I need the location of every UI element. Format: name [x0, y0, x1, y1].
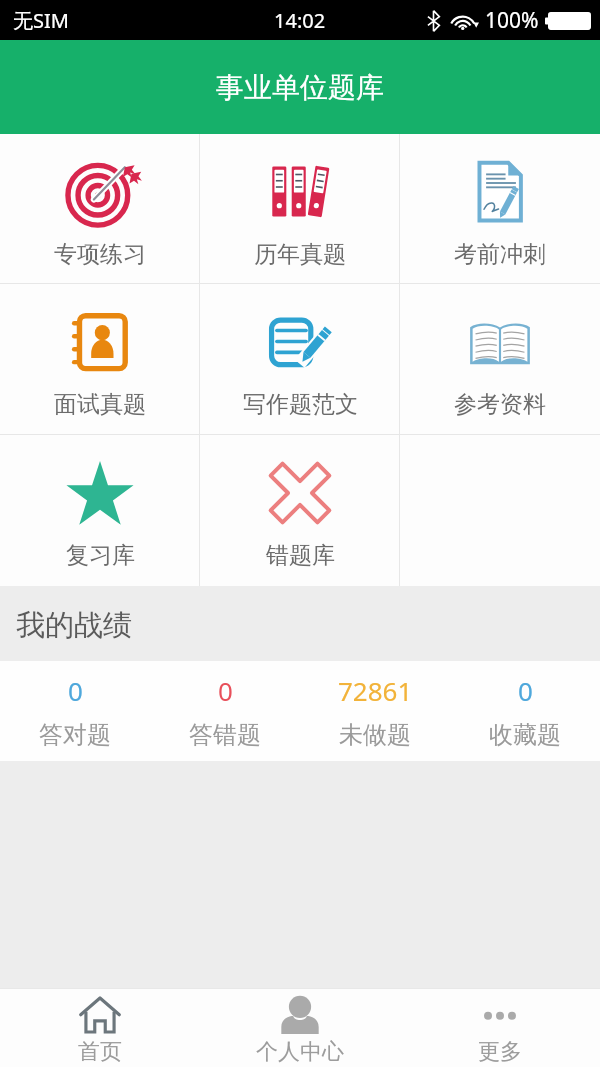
button[interactable]: 历年真题	[200, 134, 400, 284]
staticText: 14:02	[274, 7, 326, 34]
staticText: 更多	[478, 1038, 522, 1066]
staticText: 未做题	[339, 720, 411, 750]
button[interactable]: 面试真题	[0, 284, 200, 435]
staticText: 错题库	[266, 541, 335, 570]
staticText: 答错题	[189, 720, 261, 750]
staticText: 历年真题	[254, 240, 346, 269]
staticText: 0	[218, 673, 233, 708]
button[interactable]: 0	[150, 661, 300, 761]
staticText: 写作题范文	[243, 390, 358, 419]
staticText: 首页	[78, 1038, 122, 1066]
staticText: 收藏题	[489, 720, 561, 750]
button[interactable]: 考前冲刺	[400, 134, 600, 284]
button[interactable]: 参考资料	[400, 284, 600, 435]
staticText: 事业单位题库	[216, 70, 384, 105]
button[interactable]: 个人中心	[200, 989, 400, 1067]
button[interactable]: 首页	[0, 989, 200, 1067]
button[interactable]: 72861	[300, 661, 450, 761]
staticText: 复习库	[66, 541, 135, 570]
staticText: 无SIM	[13, 7, 69, 34]
staticText: 100%	[485, 6, 539, 35]
staticText: 个人中心	[256, 1038, 344, 1066]
staticText: 0	[518, 673, 533, 708]
button[interactable]: 0	[0, 661, 150, 761]
staticText: 考前冲刺	[454, 240, 546, 269]
staticText: 面试真题	[54, 390, 146, 419]
staticText: 我的战绩	[16, 607, 132, 644]
staticText: 答对题	[39, 720, 111, 750]
button[interactable]: 0	[450, 661, 600, 761]
staticText: 72861	[338, 673, 413, 708]
staticText: 专项练习	[54, 240, 146, 269]
button[interactable]: 错题库	[200, 435, 400, 586]
button[interactable]: 复习库	[0, 435, 200, 586]
button[interactable]: 专项练习	[0, 134, 200, 284]
button[interactable]: 更多	[400, 989, 600, 1067]
staticText: 0	[68, 673, 83, 708]
staticText: 参考资料	[454, 390, 546, 419]
button[interactable]: 写作题范文	[200, 284, 400, 435]
